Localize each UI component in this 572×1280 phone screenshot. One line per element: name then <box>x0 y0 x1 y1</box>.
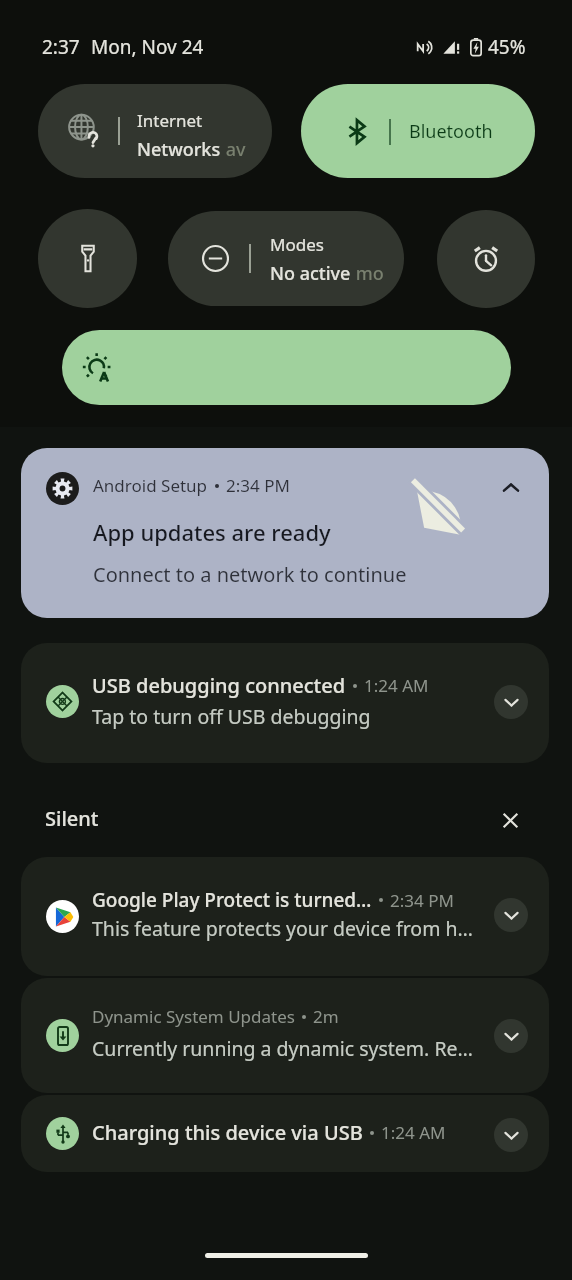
button[interactable]: Brightness <box>62 330 511 405</box>
staticText: Charging this device via USB <box>92 1119 363 1146</box>
staticText: Networks <box>137 137 221 162</box>
staticText: Google Play Protect is turned… <box>92 887 372 913</box>
button[interactable]: Internet <box>38 84 272 178</box>
button[interactable]: Expand <box>494 685 528 719</box>
staticText: 2m <box>313 1005 339 1028</box>
button[interactable]: Expand <box>494 1118 528 1152</box>
staticText: USB debugging connected <box>92 672 346 699</box>
staticText: Mon, Nov 24 <box>91 34 204 60</box>
staticText: No active <box>270 261 351 286</box>
staticText: 45% <box>488 34 526 60</box>
staticText: Bluetooth <box>409 119 493 144</box>
staticText: mo <box>351 261 384 286</box>
staticText: Modes <box>270 233 324 256</box>
staticText: 2:34 PM <box>226 474 290 497</box>
button[interactable]: Charging this device via USB <box>21 1095 549 1172</box>
button[interactable]: Google Play Protect is turned… <box>21 857 549 976</box>
button[interactable]: Expand <box>494 898 528 932</box>
staticText: Silent <box>45 805 99 832</box>
staticText: Tap to turn off USB debugging <box>92 703 371 730</box>
staticText: av <box>221 137 246 162</box>
staticText: Android Setup <box>93 474 208 497</box>
staticText: 2:34 PM <box>390 889 454 912</box>
staticText: Connect to a network to continue <box>93 561 407 588</box>
staticText: 1:24 AM <box>381 1121 446 1144</box>
button[interactable]: Collapse <box>491 468 531 508</box>
staticText: App updates are ready <box>93 517 331 547</box>
staticText: This feature protects your device from h… <box>92 915 473 942</box>
staticText: Internet <box>137 109 203 132</box>
button[interactable]: Alarm <box>437 210 535 308</box>
button[interactable]: Flashlight <box>38 209 137 308</box>
staticText: Dynamic System Updates <box>92 1005 295 1028</box>
button[interactable]: Clear silent notifications <box>493 803 528 838</box>
staticText: 1:24 AM <box>364 674 429 697</box>
button[interactable]: USB debugging connected <box>21 643 549 763</box>
button[interactable]: Expand <box>494 1019 528 1053</box>
button[interactable]: Bluetooth <box>301 84 535 178</box>
button[interactable]: Modes <box>168 211 404 306</box>
staticText: Currently running a dynamic system. Re… <box>92 1035 473 1062</box>
button[interactable]: Dynamic System Updates <box>21 978 549 1093</box>
button[interactable]: Android Setup <box>21 448 549 618</box>
staticText: 2:37 <box>42 34 80 60</box>
